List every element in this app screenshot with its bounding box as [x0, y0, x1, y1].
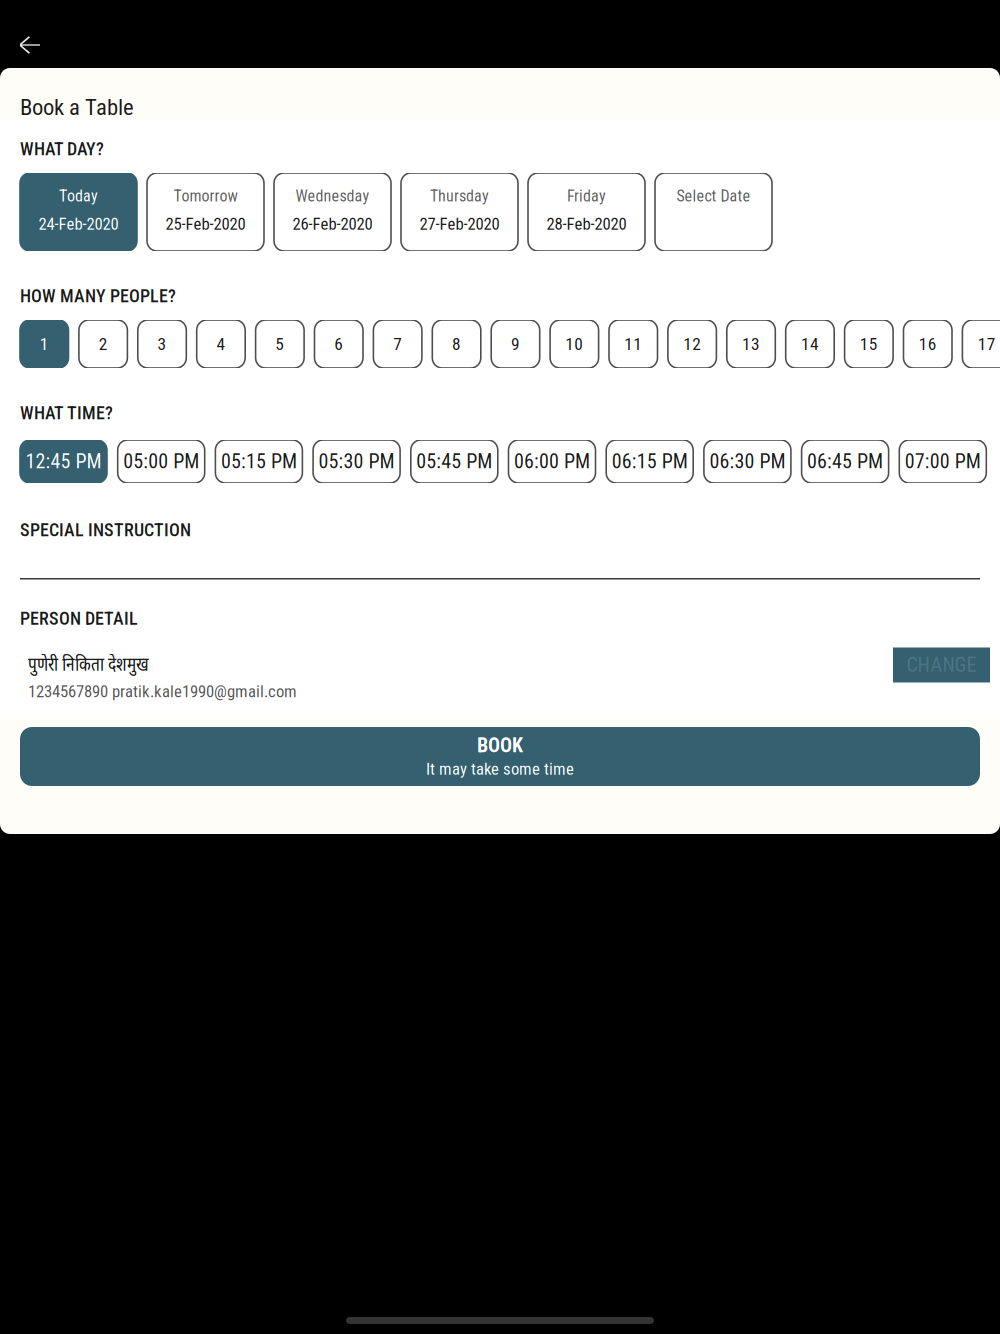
- staticText: 16: [919, 334, 937, 354]
- button[interactable]: 06:00 PM: [508, 440, 595, 483]
- staticText: 06:00 PM: [514, 450, 590, 473]
- staticText: 12:45 PM: [25, 450, 101, 473]
- button[interactable]: Wednesday: [274, 173, 391, 251]
- staticText: 13: [742, 334, 760, 354]
- staticText: Wednesday: [295, 187, 369, 205]
- staticText: 05:00 PM: [123, 450, 199, 473]
- button[interactable]: 05:30 PM: [313, 440, 400, 483]
- staticText: 24-Feb-2020: [38, 214, 118, 234]
- button[interactable]: 8: [432, 320, 481, 368]
- staticText: SPECIAL INSTRUCTION: [20, 519, 191, 541]
- staticText: 06:15 PM: [612, 450, 688, 473]
- staticText: CHANGE: [906, 653, 976, 677]
- button[interactable]: Tomorrow: [147, 173, 264, 251]
- staticText: It may take some time: [426, 759, 574, 779]
- button[interactable]: 10: [550, 320, 599, 368]
- staticText: WHAT TIME?: [20, 402, 113, 424]
- staticText: 06:30 PM: [709, 450, 785, 473]
- button[interactable]: BOOK: [20, 727, 980, 786]
- button[interactable]: Friday: [528, 173, 645, 251]
- button[interactable]: 14: [786, 320, 834, 368]
- staticText: 07:00 PM: [905, 450, 981, 473]
- button[interactable]: 12: [668, 320, 716, 368]
- staticText: 12: [683, 334, 701, 354]
- staticText: 2: [99, 334, 108, 354]
- button[interactable]: 3: [138, 320, 186, 368]
- button[interactable]: 05:15 PM: [215, 440, 302, 483]
- staticText: Friday: [567, 187, 606, 205]
- button[interactable]: Special instruction: [0, 539, 1000, 579]
- staticText: 8: [452, 334, 461, 354]
- button[interactable]: Back: [0, 0, 56, 68]
- staticText: PERSON DETAIL: [20, 608, 138, 629]
- staticText: Book a Table: [20, 94, 134, 121]
- staticText: पुणेरी निकिता देशमुख: [28, 651, 149, 676]
- button[interactable]: 7: [373, 320, 422, 368]
- staticText: Thursday: [430, 187, 489, 205]
- staticText: Select Date: [676, 187, 750, 205]
- staticText: WHAT DAY?: [20, 138, 104, 160]
- staticText: 9: [511, 334, 520, 354]
- button[interactable]: 05:45 PM: [411, 440, 498, 483]
- button[interactable]: 17: [962, 320, 1000, 368]
- staticText: Today: [59, 187, 98, 205]
- button[interactable]: Today: [20, 173, 137, 251]
- staticText: 3: [158, 334, 167, 354]
- staticText: 6: [334, 334, 343, 354]
- button[interactable]: 11: [609, 320, 657, 368]
- button[interactable]: 06:15 PM: [606, 440, 693, 483]
- staticText: 28-Feb-2020: [546, 214, 626, 234]
- button[interactable]: 1: [20, 320, 68, 368]
- button[interactable]: 4: [197, 320, 245, 368]
- button[interactable]: Thursday: [401, 173, 518, 251]
- button[interactable]: CHANGE: [893, 647, 990, 682]
- button[interactable]: 16: [903, 320, 952, 368]
- staticText: 27-Feb-2020: [419, 214, 499, 234]
- staticText: BOOK: [477, 734, 523, 757]
- staticText: 5: [275, 334, 284, 354]
- button[interactable]: 6: [314, 320, 363, 368]
- staticText: HOW MANY PEOPLE?: [20, 285, 176, 307]
- button[interactable]: 06:30 PM: [704, 440, 791, 483]
- button[interactable]: 07:00 PM: [899, 440, 986, 483]
- button[interactable]: 5: [256, 320, 304, 368]
- staticText: 10: [565, 334, 583, 354]
- staticText: 05:15 PM: [221, 450, 297, 473]
- button[interactable]: 9: [491, 320, 540, 368]
- staticText: 7: [393, 334, 402, 354]
- staticText: 05:45 PM: [416, 450, 492, 473]
- button[interactable]: 2: [79, 320, 127, 368]
- button[interactable]: 13: [727, 320, 775, 368]
- staticText: 14: [801, 334, 819, 354]
- button[interactable]: 06:45 PM: [802, 440, 889, 483]
- button[interactable]: Select Date: [655, 173, 772, 251]
- staticText: 26-Feb-2020: [292, 214, 372, 234]
- staticText: 25-Feb-2020: [165, 214, 245, 234]
- staticText: 4: [216, 334, 225, 354]
- staticText: 1234567890 pratik.kale1990@gmail.com: [28, 682, 297, 701]
- staticText: 05:30 PM: [319, 450, 395, 473]
- staticText: 06:45 PM: [807, 450, 883, 473]
- button[interactable]: 12:45 PM: [20, 440, 107, 483]
- button[interactable]: 05:00 PM: [118, 440, 205, 483]
- staticText: 11: [624, 334, 642, 354]
- staticText: 1: [40, 334, 49, 354]
- staticText: 17: [978, 334, 996, 354]
- staticText: Tomorrow: [173, 187, 237, 205]
- button[interactable]: 15: [845, 320, 893, 368]
- staticText: 15: [860, 334, 878, 354]
